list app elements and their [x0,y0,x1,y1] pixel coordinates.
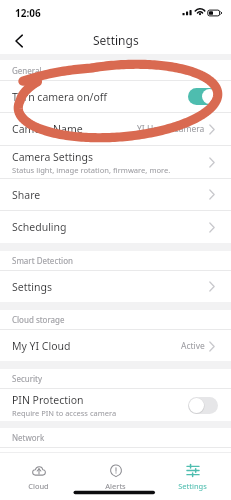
staticText: Turn camera on/off [12,90,108,104]
staticText: General [12,65,42,76]
button[interactable]: Turn camera on/off [0,81,231,112]
button[interactable]: Scheduling [0,211,231,243]
staticText: Network [12,432,45,443]
staticText: Security [12,373,43,384]
button[interactable]: Share [0,179,231,210]
button[interactable]: Cloud [0,453,77,500]
staticText: PIN Protection [12,393,84,407]
button[interactable]: My YI Cloud [0,330,231,361]
button[interactable]: Camera Settings [0,146,231,178]
staticText: Smart Detection [12,255,73,266]
staticText: Share [12,188,41,202]
staticText: Cloud [28,481,49,491]
staticText: Settings [12,280,52,294]
staticText: Active [181,340,205,352]
staticText: 12:06 [15,6,41,20]
button[interactable]: Back [0,25,36,54]
staticText: My YI Cloud [12,339,71,353]
staticText: Settings [93,32,139,48]
button[interactable]: Settings [0,271,231,302]
staticText: Settings [178,481,207,491]
staticText: Alerts [105,481,126,491]
staticText: Status light, image rotation, firmware, … [12,165,171,175]
staticText: Require PIN to access camera [12,408,117,418]
staticText: Camera Settings [12,150,93,164]
staticText: Scheduling [12,220,67,234]
button[interactable]: Alerts [77,453,154,500]
button[interactable]: Settings [154,453,231,500]
staticText: Camera Name [12,122,83,136]
staticText: Cloud storage [12,314,65,325]
button[interactable]: PIN Protection [0,389,231,421]
button[interactable]: Camera Name [0,113,231,145]
staticText: YI Home Camera [137,123,205,135]
